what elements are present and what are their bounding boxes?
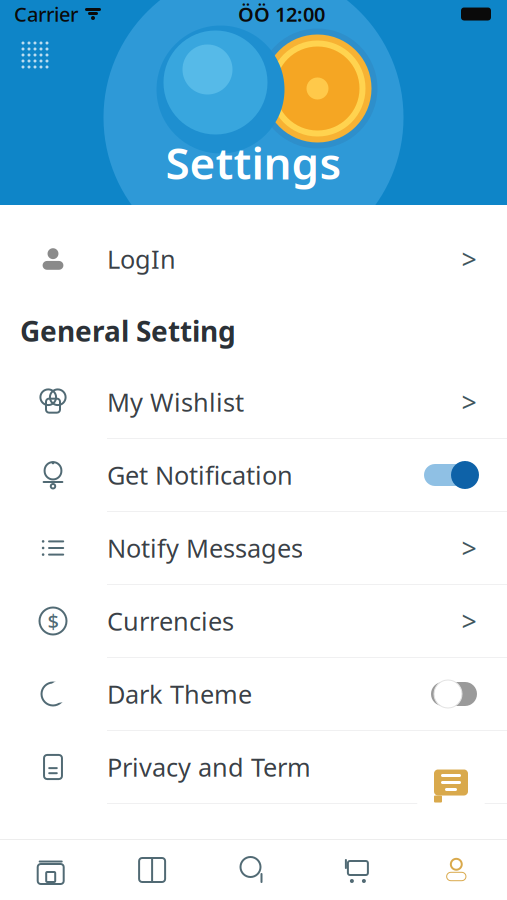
button[interactable]: Notify Messages — [0, 512, 507, 585]
button[interactable]: My Wishlist — [0, 366, 507, 439]
button[interactable]: Chat support — [413, 748, 489, 824]
button[interactable]: Privacy and Term — [0, 731, 507, 804]
staticText: Dark Theme — [107, 677, 252, 711]
button[interactable]: LogIn — [0, 223, 507, 296]
button[interactable]: Get Notification — [0, 439, 507, 512]
staticText: Get Notification — [107, 458, 293, 492]
staticText: > — [461, 530, 476, 566]
staticText: My Wishlist — [107, 385, 244, 419]
staticText: > — [461, 384, 476, 420]
staticText: Currencies — [107, 604, 234, 638]
staticText: Privacy and Term — [107, 750, 311, 784]
button[interactable]: Menu — [18, 38, 52, 72]
button[interactable]: Home — [0, 840, 101, 900]
staticText: > — [461, 241, 476, 277]
button[interactable]: Cart — [304, 840, 406, 900]
button[interactable]: Search — [203, 840, 304, 900]
staticText: Notify Messages — [107, 531, 303, 565]
staticText: Carrier — [14, 1, 78, 27]
staticText: Settings — [165, 133, 341, 192]
staticText: > — [461, 603, 476, 639]
button[interactable]: $ — [0, 585, 507, 658]
staticText: $ — [47, 608, 58, 634]
staticText: General Setting — [20, 312, 236, 350]
button[interactable]: Dark Theme — [0, 658, 507, 731]
button[interactable]: Profile — [406, 840, 507, 900]
staticText: LogIn — [107, 242, 176, 276]
button[interactable]: Categories — [101, 840, 203, 900]
staticText: ÖÖ 12:00 — [238, 1, 325, 27]
